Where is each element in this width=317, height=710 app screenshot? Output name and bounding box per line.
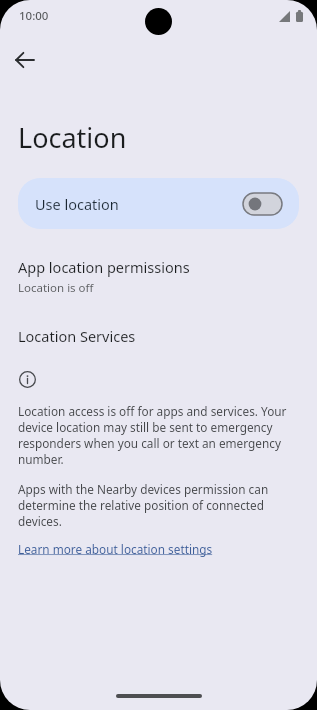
button[interactable]: Back <box>5 40 45 80</box>
staticText: Location access is off for apps and serv… <box>18 403 295 467</box>
staticText: 10:00 <box>19 8 49 24</box>
button[interactable]: App location permissions <box>0 255 317 298</box>
staticText: Location Services <box>18 326 136 346</box>
button[interactable]: Learn more about location settings <box>18 541 213 557</box>
button[interactable]: Use location <box>18 178 299 229</box>
staticText: Location is off <box>18 280 94 296</box>
staticText: Use location <box>35 194 119 214</box>
staticText: Apps with the Nearby devices permission … <box>18 481 295 529</box>
button[interactable]: Location Services <box>0 324 317 348</box>
staticText: Learn more about location settings <box>18 541 213 557</box>
other: Information <box>19 371 36 388</box>
staticText: App location permissions <box>18 257 190 277</box>
staticText: Location <box>18 119 127 156</box>
